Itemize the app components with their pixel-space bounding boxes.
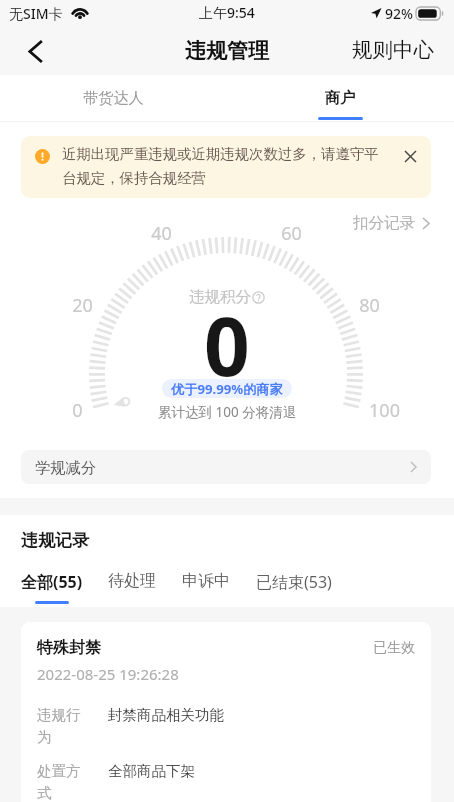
staticText: 违规积分 xyxy=(189,287,251,307)
staticText: 已结束(53) xyxy=(256,571,332,593)
button[interactable]: Back xyxy=(16,31,56,71)
staticText: 0 xyxy=(204,290,250,399)
staticText: 上午9:54 xyxy=(199,3,255,22)
button[interactable]: 已结束(53) xyxy=(256,571,332,604)
staticText: 规则中心 xyxy=(352,37,434,63)
staticText: 优于99.99%的商家 xyxy=(171,380,283,398)
staticText: 封禁商品相关功能 xyxy=(108,706,415,724)
staticText: 20 xyxy=(71,293,94,318)
staticText: 无SIM卡 xyxy=(9,4,63,23)
staticText: 92% xyxy=(385,4,413,23)
staticText: 违规行为 xyxy=(37,706,83,747)
staticText: 近期出现严重违规或近期违规次数过多，请遵守平台规定，保持合规经营 xyxy=(62,145,390,187)
staticText: 已生效 xyxy=(373,639,415,657)
staticText: 60 xyxy=(280,221,303,246)
staticText: 违规管理 xyxy=(185,38,269,64)
button[interactable]: 全部(55) xyxy=(21,571,83,604)
button[interactable]: 申诉中 xyxy=(182,571,230,602)
staticText: 2022-08-25 19:26:28 xyxy=(37,664,179,684)
staticText: 80 xyxy=(358,293,381,318)
button[interactable]: 带货达人 xyxy=(0,75,227,122)
staticText: 100 xyxy=(368,398,401,423)
staticText: 申诉中 xyxy=(182,571,230,591)
button[interactable]: 规则中心 xyxy=(349,33,437,67)
button[interactable]: Close xyxy=(402,148,419,165)
button[interactable]: 学规减分 xyxy=(21,450,431,484)
staticText: 处置方式 xyxy=(37,762,83,802)
button[interactable]: 近期出现严重违规或近期违规次数过多，请遵守平台规定，保持合规经营 xyxy=(21,136,431,198)
staticText: 全部(55) xyxy=(21,571,83,593)
button[interactable]: 商户 xyxy=(227,75,454,122)
button[interactable]: 待处理 xyxy=(108,571,156,602)
staticText: 扣分记录 xyxy=(353,213,415,233)
staticText: 特殊封禁 xyxy=(37,638,101,658)
staticText: 40 xyxy=(150,221,173,246)
button[interactable]: 扣分记录 xyxy=(353,213,430,233)
staticText: 0 xyxy=(71,398,84,423)
staticText: 违规记录 xyxy=(21,530,89,551)
staticText: 待处理 xyxy=(108,571,156,591)
staticText: 商户 xyxy=(325,88,356,107)
staticText: 全部商品下架 xyxy=(108,762,415,780)
staticText: 学规减分 xyxy=(35,458,97,477)
staticText: 带货达人 xyxy=(83,88,144,107)
button[interactable]: 特殊封禁 xyxy=(21,622,431,802)
staticText: 累计达到 100 分将清退 xyxy=(158,403,297,421)
